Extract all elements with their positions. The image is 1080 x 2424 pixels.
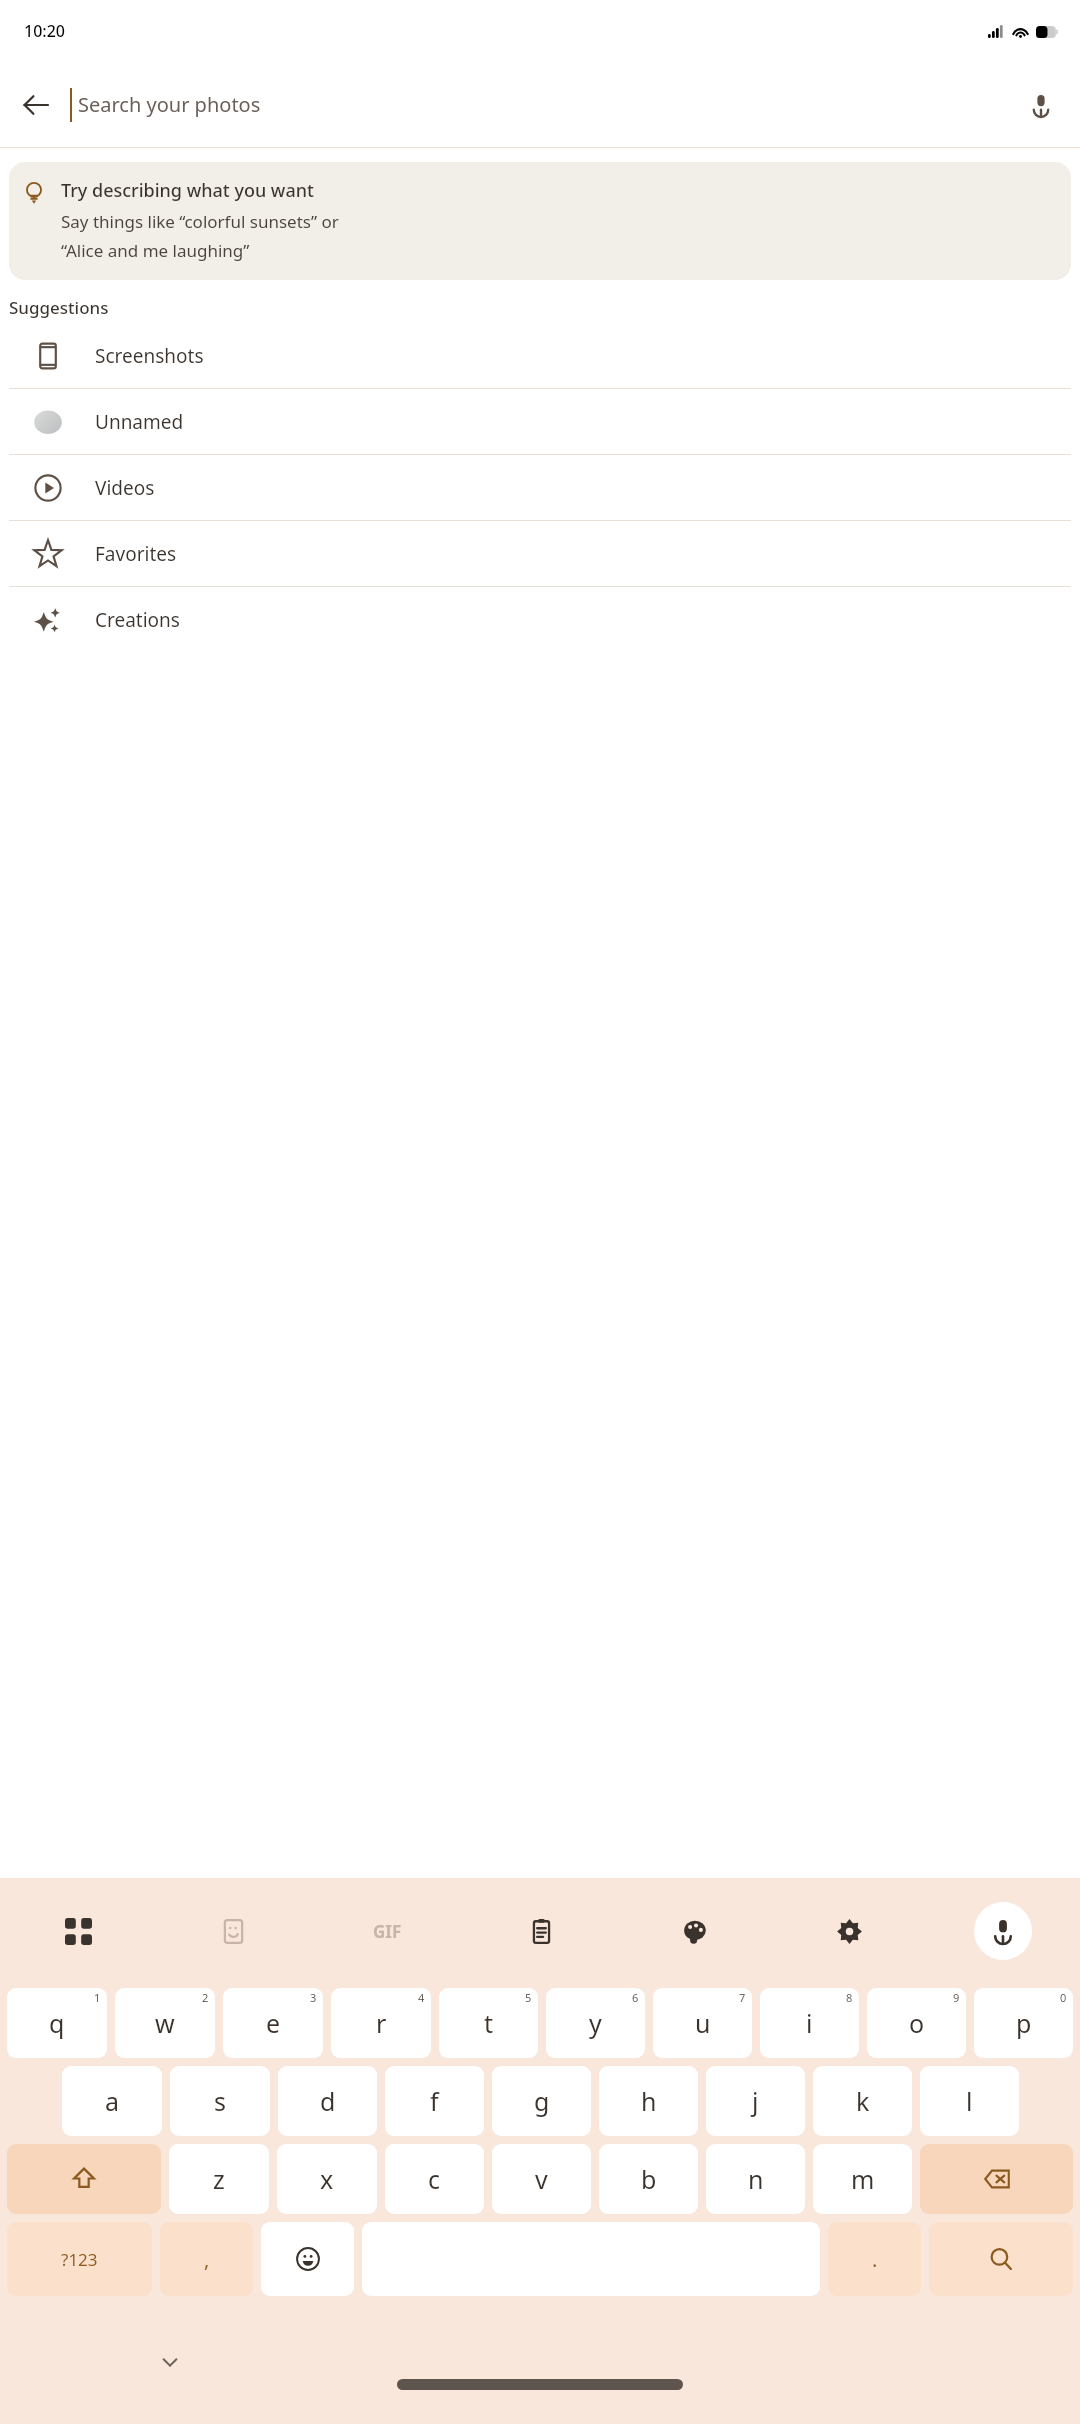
button[interactable]: u: [653, 1988, 752, 2058]
button[interactable]: n: [706, 2144, 805, 2214]
staticText: 6: [632, 1990, 639, 2005]
button[interactable]: g: [492, 2066, 591, 2136]
other: Shift: [71, 2166, 97, 2192]
button[interactable]: Themes: [666, 1902, 724, 1960]
staticText: 3: [310, 1990, 317, 2005]
button[interactable]: Screenshots: [0, 323, 1080, 388]
staticText: y: [589, 2006, 602, 2040]
staticText: u: [695, 2006, 711, 2040]
button[interactable]: Unnamed: [0, 389, 1080, 454]
staticText: Say things like “colorful sunsets” or: [61, 210, 339, 233]
staticText: v: [535, 2162, 548, 2196]
staticText: p: [1016, 2006, 1032, 2040]
button[interactable]: ?123: [7, 2222, 152, 2296]
staticText: e: [266, 2006, 281, 2040]
button[interactable]: .: [828, 2222, 921, 2296]
staticText: z: [213, 2162, 225, 2196]
button[interactable]: ,: [160, 2222, 253, 2296]
button[interactable]: Back: [8, 77, 64, 133]
staticText: w: [155, 2006, 175, 2040]
button[interactable]: Favorites: [0, 521, 1080, 586]
staticText: l: [966, 2084, 973, 2118]
button[interactable]: z: [169, 2144, 269, 2214]
button[interactable]: k: [813, 2066, 912, 2136]
staticText: c: [428, 2162, 441, 2196]
staticText: 7: [739, 1990, 746, 2005]
staticText: x: [320, 2162, 334, 2196]
button[interactable]: Creations: [0, 587, 1080, 652]
button[interactable]: Try describing what you want: [9, 162, 1071, 280]
button[interactable]: Backspace: [920, 2144, 1073, 2214]
staticText: n: [748, 2162, 764, 2196]
button[interactable]: x: [277, 2144, 377, 2214]
button[interactable]: Voice input: [974, 1902, 1032, 1960]
button[interactable]: s: [170, 2066, 270, 2136]
button[interactable]: GIF: [358, 1902, 416, 1960]
staticText: j: [752, 2084, 759, 2118]
staticText: 4: [418, 1990, 425, 2005]
button[interactable]: Emoji: [261, 2222, 354, 2296]
staticText: g: [534, 2084, 550, 2118]
staticText: 9: [953, 1990, 960, 2005]
staticText: Suggestions: [9, 296, 109, 319]
staticText: ?123: [61, 2248, 98, 2271]
button[interactable]: p: [974, 1988, 1073, 2058]
staticText: Unnamed: [95, 409, 184, 435]
staticText: 0: [1060, 1990, 1067, 2005]
staticText: Screenshots: [95, 343, 204, 369]
staticText: 10:20: [24, 20, 65, 42]
staticText: “Alice and me laughing”: [61, 239, 250, 262]
staticText: m: [851, 2162, 875, 2196]
staticText: 1: [94, 1990, 101, 2005]
staticText: 8: [846, 1990, 853, 2005]
staticText: Favorites: [95, 541, 177, 567]
button[interactable]: e: [223, 1988, 323, 2058]
button[interactable]: c: [385, 2144, 484, 2214]
staticText: r: [376, 2006, 387, 2040]
button[interactable]: j: [706, 2066, 805, 2136]
button[interactable]: Videos: [0, 455, 1080, 520]
button[interactable]: f: [385, 2066, 484, 2136]
button[interactable]: y: [546, 1988, 645, 2058]
staticText: d: [320, 2084, 336, 2118]
staticText: ,: [204, 2246, 210, 2273]
staticText: Creations: [95, 607, 180, 633]
button[interactable]: l: [920, 2066, 1019, 2136]
staticText: Videos: [95, 475, 155, 501]
button[interactable]: i: [760, 1988, 859, 2058]
staticText: a: [105, 2084, 120, 2118]
button[interactable]: Search: [929, 2222, 1073, 2296]
staticText: 5: [525, 1990, 532, 2005]
button[interactable]: w: [115, 1988, 215, 2058]
button[interactable]: b: [599, 2144, 698, 2214]
button[interactable]: Stickers: [204, 1902, 262, 1960]
button[interactable]: h: [599, 2066, 698, 2136]
button[interactable]: Apps: [49, 1902, 107, 1960]
staticText: t: [484, 2006, 494, 2040]
staticText: i: [806, 2006, 813, 2040]
staticText: 2: [202, 1990, 209, 2005]
button[interactable]: Hide keyboard: [150, 2342, 190, 2382]
staticText: q: [49, 2006, 65, 2040]
button[interactable]: m: [813, 2144, 912, 2214]
staticText: b: [641, 2162, 657, 2196]
staticText: GIF: [373, 1920, 402, 1943]
button[interactable]: v: [492, 2144, 591, 2214]
button[interactable]: r: [331, 1988, 431, 2058]
staticText: k: [856, 2084, 870, 2118]
button[interactable]: d: [278, 2066, 377, 2136]
button[interactable]: t: [439, 1988, 538, 2058]
button[interactable]: a: [62, 2066, 162, 2136]
button[interactable]: Voice search: [1014, 78, 1068, 132]
button[interactable]: Clipboard: [512, 1902, 570, 1960]
staticText: s: [214, 2084, 226, 2118]
button[interactable]: o: [867, 1988, 966, 2058]
button[interactable]: q: [7, 1988, 107, 2058]
button[interactable]: Shift: [7, 2144, 161, 2214]
button[interactable]: Settings: [820, 1902, 878, 1960]
staticText: o: [909, 2006, 925, 2040]
staticText: Search your photos: [78, 91, 261, 118]
other: Search: [988, 2246, 1014, 2272]
other: Backspace: [983, 2165, 1011, 2193]
